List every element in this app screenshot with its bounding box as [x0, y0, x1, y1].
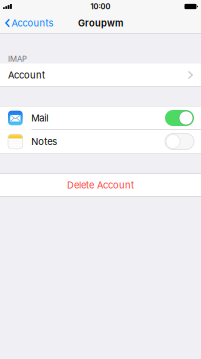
- staticText: IMAP: [8, 54, 27, 63]
- staticText: Mail: [31, 112, 48, 124]
- button[interactable]: Accounts: [0, 13, 57, 33]
- staticText: Notes: [31, 136, 57, 147]
- staticText: Accounts: [11, 17, 53, 29]
- button[interactable]: Account: [0, 63, 201, 86]
- staticText: Delete Account: [67, 179, 134, 191]
- staticText: Groupwm: [78, 17, 123, 29]
- staticText: Account: [8, 69, 45, 81]
- staticText: 10:00: [90, 2, 110, 11]
- button[interactable]: Delete Account: [0, 174, 201, 196]
